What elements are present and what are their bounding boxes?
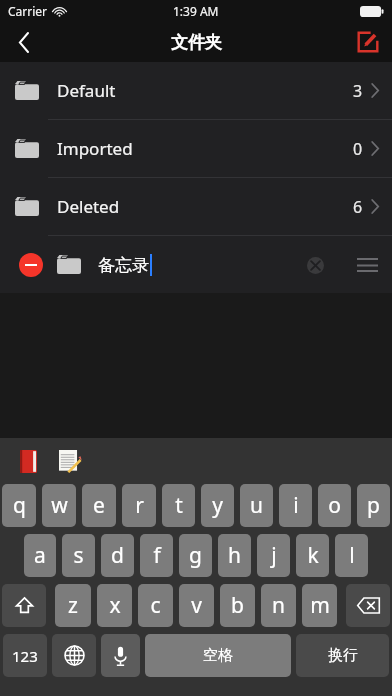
button[interactable]: Memo emoji [54,445,86,477]
staticText: k [307,541,319,570]
staticText: p [367,491,380,520]
staticText: Deleted [57,195,120,218]
staticText: Carrier [8,3,48,19]
button[interactable]: n [261,584,296,627]
button[interactable]: y [201,484,234,527]
button[interactable]: Reorder [348,245,386,285]
button[interactable]: Dictate [101,634,140,677]
staticText: c [150,591,161,620]
button[interactable]: 空格 [145,634,291,677]
button[interactable]: x [97,584,132,627]
button[interactable]: t [162,484,195,527]
staticText: l [349,541,355,570]
staticText: Imported [57,137,133,160]
staticText: 123 [12,646,38,666]
button[interactable]: Deleted [0,178,392,235]
staticText: e [93,491,105,520]
staticText: o [328,491,341,520]
button[interactable]: g [179,534,212,577]
button[interactable]: a [24,534,56,577]
button[interactable]: z [55,584,91,627]
staticText: 备忘录 [98,255,149,276]
button[interactable]: 换行 [296,634,389,677]
staticText: 6 [353,196,363,218]
button[interactable]: Clear text [298,248,332,282]
staticText: g [189,541,202,570]
staticText: d [111,541,124,570]
button[interactable]: w [42,484,76,527]
button[interactable]: o [318,484,351,527]
button[interactable]: Change keyboard [52,634,96,677]
button[interactable]: q [2,484,36,527]
staticText: i [293,491,299,520]
button[interactable]: f [140,534,173,577]
button[interactable]: Backspace [346,584,390,627]
staticText: r [135,491,144,520]
staticText: f [153,541,161,570]
staticText: 空格 [203,646,233,665]
button[interactable]: Delete folder [19,253,43,277]
staticText: b [231,591,244,620]
button[interactable]: u [240,484,273,527]
staticText: h [228,541,241,570]
button[interactable]: 123 [3,634,47,677]
staticText: 1:39 AM [173,3,219,19]
staticText: s [73,541,84,570]
button[interactable]: New folder [344,22,392,62]
button[interactable]: Default [0,62,392,119]
button[interactable]: Shift [2,584,46,627]
button[interactable]: v [179,584,214,627]
staticText: j [271,541,277,570]
button[interactable]: e [82,484,116,527]
button[interactable]: Imported [0,120,392,177]
button[interactable]: h [218,534,251,577]
staticText: y [212,491,223,520]
button[interactable]: r [122,484,156,527]
button[interactable]: k [296,534,329,577]
staticText: x [109,591,121,620]
button[interactable]: i [279,484,312,527]
button[interactable]: Book emoji [12,445,44,477]
button[interactable]: b [220,584,255,627]
staticText: u [250,491,263,520]
button[interactable]: Back [0,22,48,62]
staticText: Default [57,79,116,102]
staticText: 文件夹 [171,32,222,53]
button[interactable]: d [101,534,134,577]
staticText: w [51,491,68,520]
staticText: 3 [353,80,363,102]
button[interactable]: s [62,534,95,577]
button[interactable]: c [138,584,173,627]
staticText: q [13,491,26,520]
staticText: t [175,491,183,520]
staticText: n [272,591,285,620]
button[interactable]: p [357,484,390,527]
staticText: z [68,591,78,620]
button[interactable]: j [257,534,290,577]
staticText: a [34,541,46,570]
staticText: m [310,591,330,620]
button[interactable]: m [302,584,337,627]
staticText: 0 [353,138,363,160]
staticText: 换行 [328,646,358,665]
button[interactable]: l [335,534,368,577]
staticText: v [191,591,202,620]
